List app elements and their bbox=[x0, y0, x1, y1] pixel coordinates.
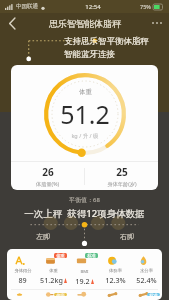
staticText: 偏重 bbox=[56, 253, 65, 258]
button[interactable]: 标准 bbox=[69, 253, 100, 286]
button[interactable]: 25 bbox=[85, 162, 158, 190]
staticText: 支持思乐智平衡体脂秤 bbox=[64, 36, 149, 47]
button[interactable]: 偏高 bbox=[38, 293, 69, 296]
staticText: 89 bbox=[18, 275, 27, 285]
staticText: 12:54 bbox=[85, 3, 101, 11]
button[interactable]: 基础代谢 bbox=[7, 293, 38, 296]
button[interactable]: 体脂率 bbox=[100, 253, 131, 285]
button[interactable]: 肌肉量 bbox=[69, 293, 100, 296]
button[interactable]: Back bbox=[4, 15, 20, 31]
staticText: 75% bbox=[140, 3, 151, 10]
button[interactable]: 体重 bbox=[11, 65, 158, 190]
button[interactable]: 偏重 bbox=[38, 253, 69, 285]
button[interactable]: More options bbox=[149, 15, 165, 31]
staticText: 标准 bbox=[149, 293, 158, 296]
staticText: 体重 bbox=[49, 268, 58, 273]
button[interactable]: 水分率 bbox=[131, 253, 162, 285]
staticText: 体重 bbox=[79, 88, 92, 96]
staticText: 智能蓝牙连接 bbox=[64, 49, 115, 60]
staticText: 右脚 bbox=[120, 232, 134, 241]
staticText: 51.2 bbox=[60, 97, 110, 131]
staticText: 偏高 bbox=[56, 293, 65, 296]
staticText: 19.2 bbox=[75, 276, 90, 286]
staticText: 思乐智智能体脂秤 bbox=[49, 18, 121, 29]
staticText: 身体得分 bbox=[14, 268, 32, 273]
staticText: 一次上秤 获得12项身体数据 bbox=[24, 207, 145, 220]
button[interactable]: 标准 bbox=[131, 293, 162, 296]
staticText: 中国联通 bbox=[16, 3, 38, 10]
staticText: 标准 bbox=[87, 253, 96, 258]
staticText: 12.3% bbox=[105, 275, 126, 285]
staticText: 51.2kg bbox=[40, 275, 63, 285]
button[interactable]: 骨量率 bbox=[100, 293, 131, 296]
staticText: kg / 升 / 级 bbox=[71, 132, 99, 140]
staticText: 25 bbox=[116, 165, 128, 179]
staticText: 52.4% bbox=[136, 275, 157, 285]
button[interactable]: 身体得分 bbox=[7, 253, 38, 285]
staticText: 左脚 bbox=[36, 232, 50, 241]
staticText: 体脂率 bbox=[109, 268, 122, 273]
staticText: 26 bbox=[42, 165, 54, 179]
staticText: BMI bbox=[80, 268, 89, 274]
button[interactable]: 26 bbox=[11, 162, 84, 190]
staticText: 平衡值：68 bbox=[69, 196, 100, 204]
staticText: 体脂量(%) bbox=[36, 180, 59, 187]
staticText: 水分率 bbox=[140, 268, 153, 273]
staticText: 身体年龄(岁) bbox=[107, 180, 137, 187]
